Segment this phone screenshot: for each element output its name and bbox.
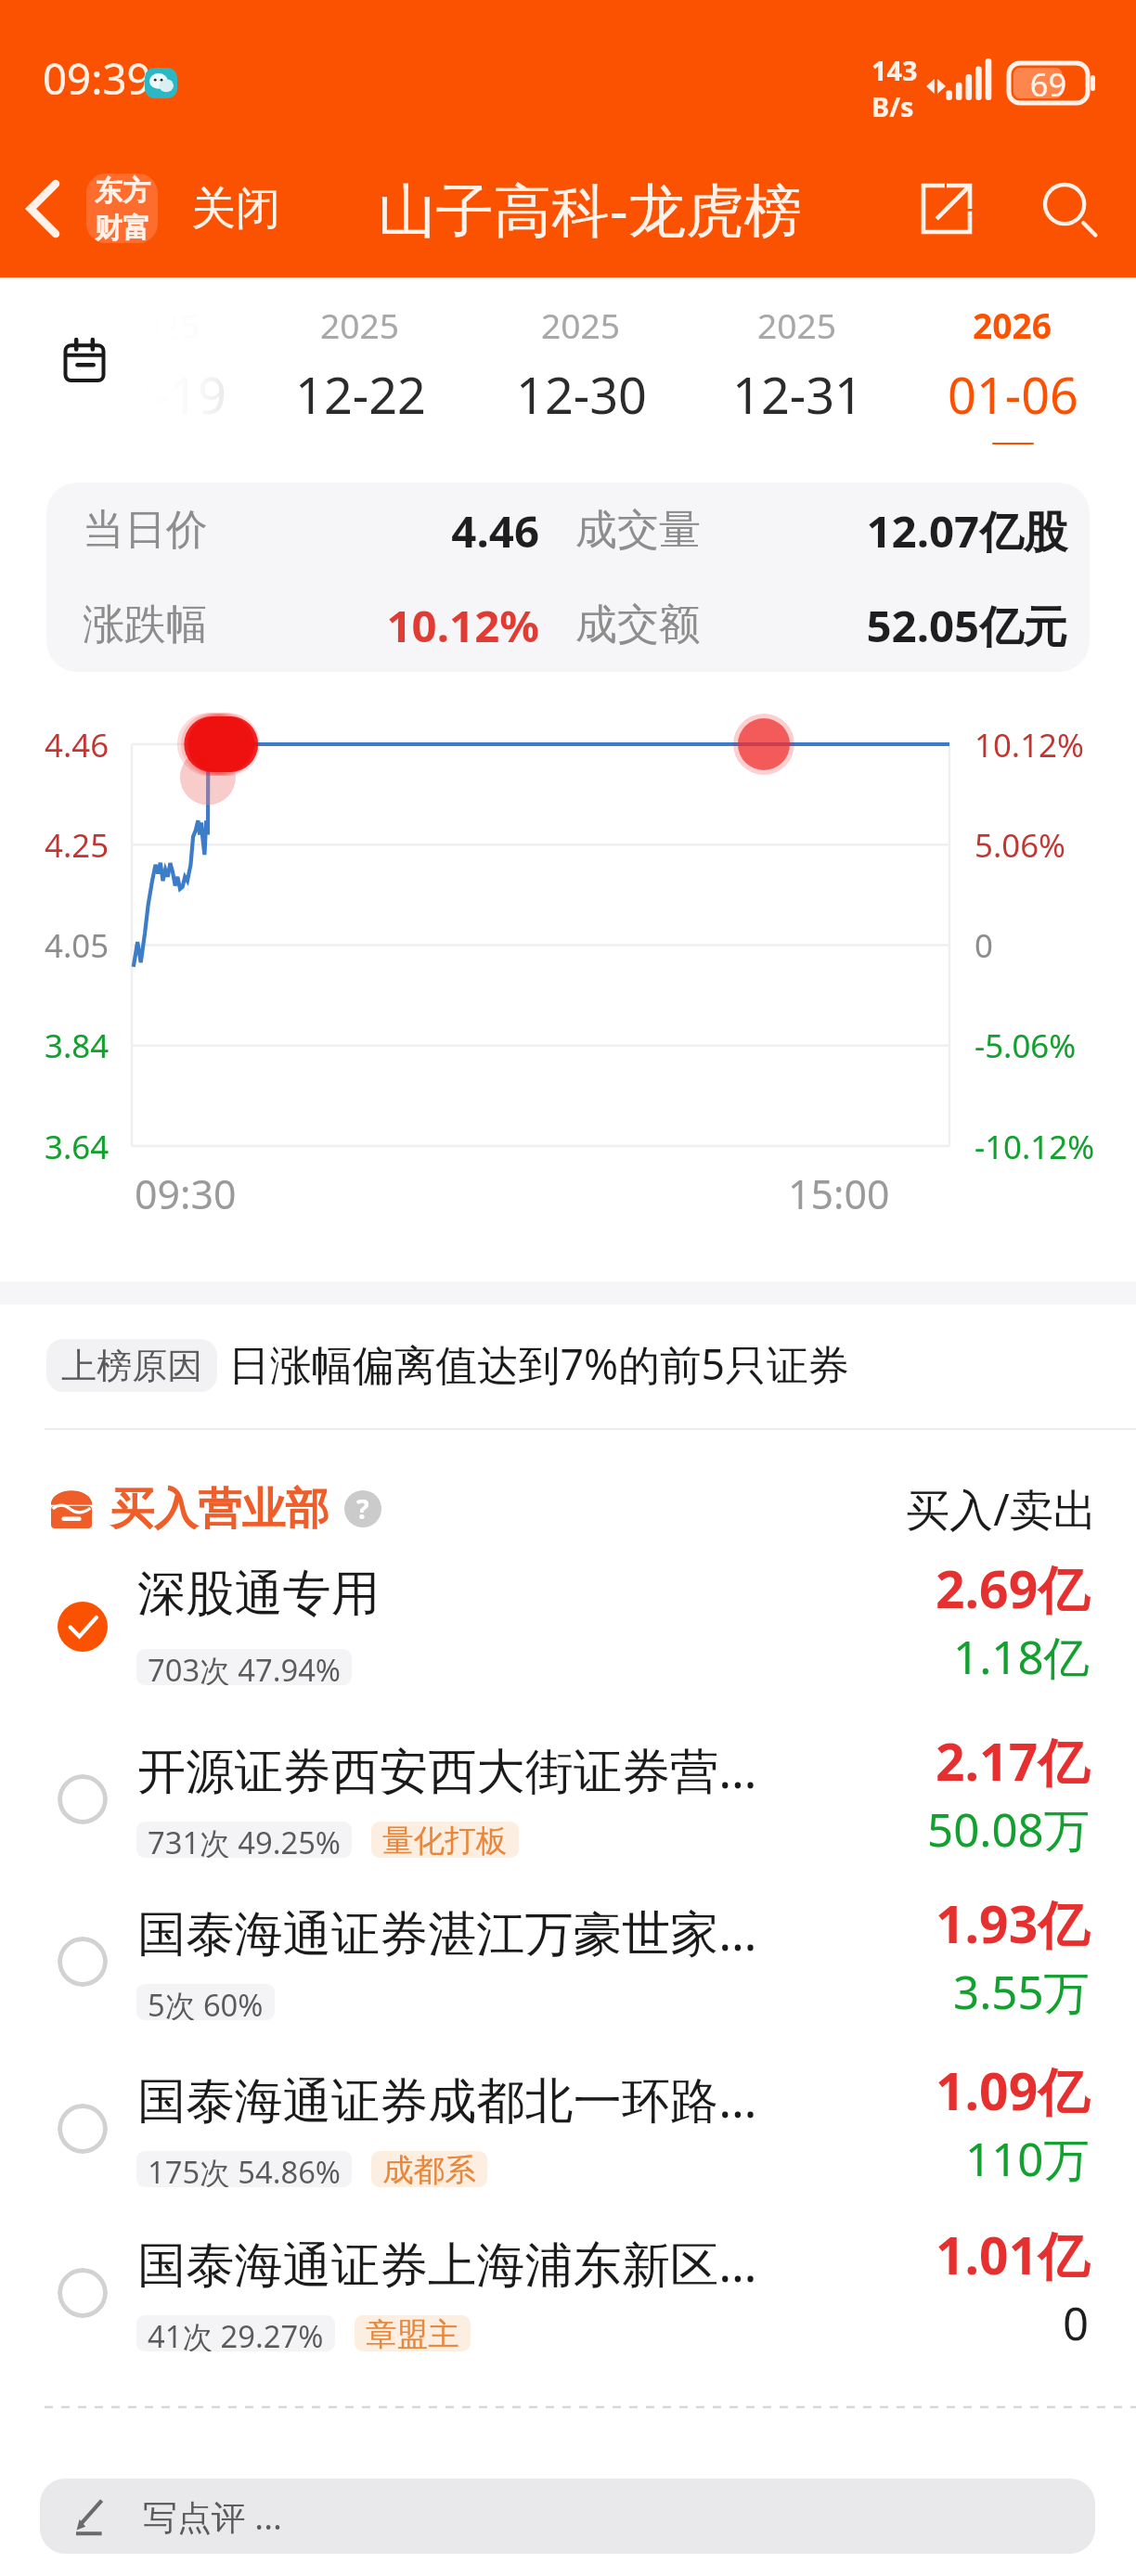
- staticText: 12-19: [96, 360, 226, 429]
- staticText: 卖出/买入: [906, 2473, 1097, 2532]
- staticText: 2025: [320, 302, 400, 349]
- staticText: 175次 54.86%: [148, 2151, 341, 2187]
- button[interactable]: 卖出营业部: [51, 2464, 1097, 2542]
- staticText: 10.12%: [208, 595, 539, 655]
- button[interactable]: 2025: [274, 277, 446, 444]
- staticText: B/s: [871, 88, 914, 124]
- staticText: 财富: [95, 211, 150, 243]
- staticText: 1.09亿: [936, 2055, 1090, 2125]
- button[interactable]: 开源证券西安西大街证券营…: [0, 1716, 1136, 1883]
- button[interactable]: 东方: [86, 174, 158, 243]
- staticText: 0: [975, 923, 993, 967]
- staticText: 卖出营业部: [110, 2476, 329, 2531]
- staticText: 1.93亿: [936, 1888, 1090, 1958]
- staticText: 09:30: [135, 1166, 237, 1220]
- staticText: 5.06%: [975, 823, 1065, 867]
- staticText: 731次 49.25%: [148, 1822, 341, 1858]
- staticText: 写点评 ...: [143, 2493, 282, 2540]
- button[interactable]: 2026: [926, 277, 1099, 444]
- staticText: 12-22: [295, 360, 426, 429]
- staticText: 69: [1009, 62, 1088, 102]
- staticText: 01-06: [948, 360, 1078, 429]
- button[interactable]: 写点评 ...: [40, 2479, 1095, 2554]
- staticText: 41次 29.27%: [148, 2315, 324, 2351]
- staticText: 东方: [95, 174, 150, 209]
- button[interactable]: Search: [1022, 161, 1117, 256]
- staticText: 10.12%: [975, 723, 1084, 766]
- staticText: 涨跌幅: [83, 599, 208, 651]
- staticText: 12.07亿股: [701, 500, 1067, 560]
- staticText: 量化打板: [382, 1822, 508, 1858]
- staticText: 国泰海通证券上海浦东新区…: [137, 2230, 757, 2296]
- button[interactable]: Help: [344, 1490, 381, 1527]
- button[interactable]: 2025: [711, 277, 884, 444]
- staticText: 0: [1063, 2291, 1090, 2353]
- staticText: 110万: [965, 2127, 1090, 2189]
- staticText: 1.01亿: [936, 2220, 1090, 2289]
- staticText: 深股通专用: [137, 1564, 380, 1625]
- staticText: ?: [356, 1491, 369, 1527]
- button[interactable]: 关闭: [191, 181, 280, 237]
- staticText: 上榜原因: [61, 1344, 203, 1388]
- staticText: 成都系: [382, 2151, 476, 2187]
- staticText: 买入营业部: [110, 1482, 329, 1537]
- staticText: 1.18亿: [953, 1625, 1090, 1687]
- staticText: 12-31: [732, 360, 863, 429]
- staticText: 买入/卖出: [906, 1479, 1097, 1539]
- staticText: 2025: [757, 302, 837, 349]
- staticText: 3.55万: [953, 1960, 1090, 2022]
- staticText: 12-30: [516, 360, 647, 429]
- button[interactable]: Share: [899, 161, 994, 256]
- staticText: 开源证券西安西大街证券营…: [137, 1736, 757, 1802]
- staticText: 09:39: [43, 49, 151, 107]
- staticText: 国泰海通证券成都北一环路…: [137, 2066, 757, 2132]
- staticText: 日涨幅偏离值达到7%的前5只证券: [228, 1335, 850, 1392]
- button[interactable]: 2025: [495, 277, 667, 444]
- button[interactable]: 国泰海通证券成都北一环路…: [0, 2045, 1136, 2212]
- button[interactable]: 深股通专用: [0, 1543, 1136, 1710]
- staticText: -10.12%: [975, 1125, 1095, 1168]
- staticText: 52.05亿元: [701, 595, 1067, 655]
- staticText: 50.08万: [927, 1797, 1090, 1860]
- staticText: 703次 47.94%: [148, 1649, 341, 1685]
- staticText: 当日价: [83, 504, 208, 557]
- staticText: 成交量: [575, 504, 701, 557]
- staticText: 山子高科-龙虎榜: [378, 169, 802, 248]
- staticText: 5次 60%: [148, 1984, 264, 2020]
- staticText: 4.05: [45, 923, 110, 967]
- staticText: 2.69亿: [936, 1553, 1090, 1623]
- button[interactable]: 国泰海通证券上海浦东新区…: [0, 2209, 1136, 2376]
- staticText: 15:00: [788, 1166, 890, 1220]
- staticText: 3.64: [45, 1125, 110, 1168]
- button[interactable]: Back: [0, 139, 86, 277]
- staticText: 3.84: [45, 1024, 110, 1067]
- staticText: 4.46: [45, 723, 110, 766]
- staticText: 2.17亿: [936, 1726, 1090, 1796]
- staticText: 2026: [973, 302, 1052, 349]
- staticText: 4.25: [45, 823, 110, 867]
- staticText: 2025: [541, 302, 621, 349]
- staticText: 成交额: [575, 599, 701, 651]
- staticText: 4.46: [208, 500, 539, 560]
- button[interactable]: 国泰海通证券湛江万豪世家…: [0, 1878, 1136, 2045]
- staticText: -5.06%: [975, 1024, 1077, 1067]
- staticText: 143: [871, 52, 918, 88]
- staticText: 国泰海通证券湛江万豪世家…: [137, 1899, 757, 1964]
- button[interactable]: Calendar: [64, 340, 105, 380]
- button[interactable]: 2025: [74, 277, 247, 444]
- staticText: 章盟主: [366, 2315, 459, 2351]
